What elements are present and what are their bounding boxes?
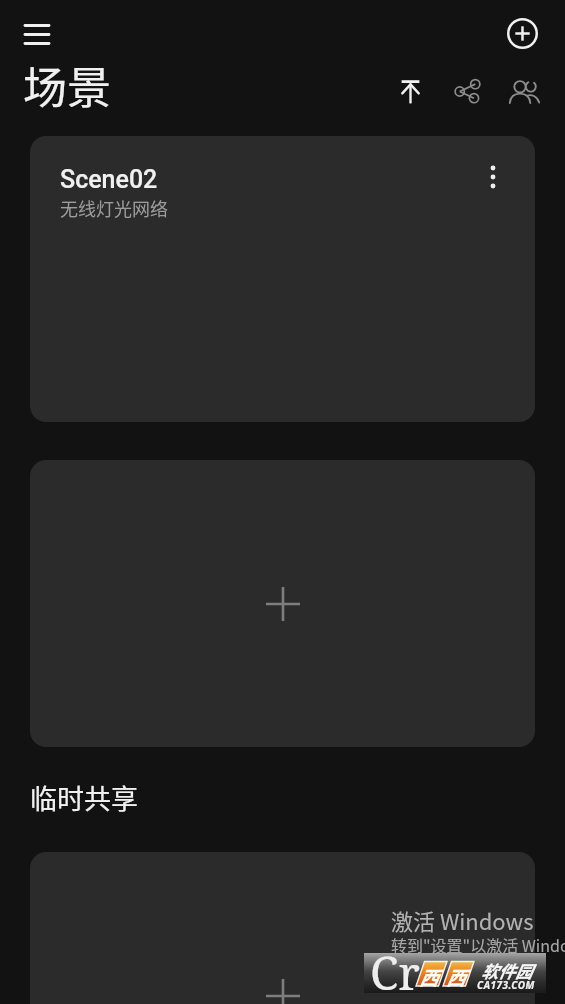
button[interactable]: Scene02 <box>30 136 535 422</box>
staticText: CA173.COM <box>477 978 535 992</box>
button[interactable]: Add scene <box>30 852 535 1004</box>
button[interactable]: Share <box>444 68 490 114</box>
staticText: 软件园 <box>481 958 532 983</box>
staticText: Cr <box>370 941 420 1004</box>
staticText: 场景 <box>23 53 111 117</box>
staticText: 临时共享 <box>30 778 138 817</box>
button[interactable]: Add <box>500 11 544 55</box>
staticText: 激活 Windows <box>391 904 534 936</box>
button[interactable]: Members <box>501 68 547 114</box>
button[interactable]: More options <box>472 156 514 198</box>
button[interactable]: Upload <box>387 68 433 114</box>
staticText: 无线灯光网络 <box>60 195 168 221</box>
staticText: Scene02 <box>60 165 158 194</box>
button[interactable]: Menu <box>14 11 60 57</box>
staticText: 西西 <box>419 963 474 991</box>
staticText: 转到"设置"以激活 Windows。 <box>391 933 565 956</box>
